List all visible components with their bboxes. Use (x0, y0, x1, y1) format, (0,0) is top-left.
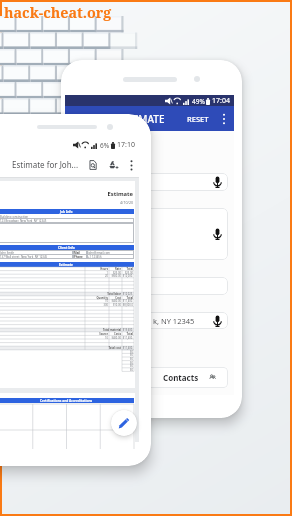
staticText: $0 (122, 357, 133, 361)
staticText: $12,025.00 (122, 292, 133, 296)
staticText: Estimate for Joh... (12, 159, 79, 170)
staticText: $11,400.00 (122, 299, 133, 303)
staticText: 10 (85, 299, 108, 303)
button[interactable]: RESET (183, 109, 213, 129)
button[interactable]: More options (126, 156, 137, 174)
staticText: $0 (122, 368, 133, 372)
staticText: Contacts (163, 372, 199, 383)
staticText: 123 Broadway, New York, NY 12345 (0, 219, 47, 223)
staticText: john@email.com (88, 251, 110, 255)
staticText: $25.00 (122, 271, 133, 275)
staticText: $400.00 (109, 336, 121, 340)
button[interactable]: Save to Drive (106, 156, 122, 174)
staticText: $0 (122, 350, 133, 354)
staticText: 300 (85, 303, 108, 307)
staticText: Total cost (85, 346, 121, 350)
staticText: 1 (85, 271, 108, 275)
staticText: ESTIMATE (118, 112, 165, 126)
staticText: Estimate (0, 190, 133, 198)
staticText: $25.00 (109, 271, 121, 275)
staticText: Estimate (59, 263, 74, 267)
staticText: Source (85, 332, 108, 336)
staticText: 17:04 (212, 96, 230, 106)
staticText: 17:10 (117, 140, 135, 150)
staticText: $0 (122, 353, 133, 357)
button[interactable]: Contacts (79, 367, 228, 388)
staticText: 137 Wall street, New York, NY 12345 (0, 255, 48, 259)
staticText: John Smith (0, 251, 15, 255)
staticText: Total cost (122, 267, 133, 271)
staticText: $11,400.00 (122, 346, 133, 350)
button[interactable]: Voice input (79, 208, 228, 260)
staticText: $19,400.00 (122, 328, 133, 332)
staticText: $400.00 (109, 299, 121, 303)
staticText: 4/10/20 (0, 200, 133, 205)
staticText: 6% (100, 141, 110, 150)
staticText: Total labor (85, 292, 121, 296)
staticText: Quantity (85, 296, 108, 300)
staticText: Certifications and Accreditations (40, 399, 93, 403)
staticText: k, NY 12345 (153, 316, 195, 326)
staticText: Building construction (0, 215, 29, 219)
button[interactable]: More options (217, 109, 231, 129)
button[interactable]: Voice input (79, 173, 228, 191)
staticText: $600.00 (109, 274, 121, 278)
staticText: 49% (192, 97, 205, 106)
staticText: 10 (85, 336, 108, 340)
staticText: Phone (74, 255, 83, 259)
staticText: Total cost (122, 296, 133, 300)
staticText: Rate (109, 267, 121, 271)
other: Voice input (213, 228, 222, 240)
staticText: $12,000.00 (122, 274, 133, 278)
button[interactable]: Preview (85, 156, 101, 174)
staticText: RESET (187, 114, 209, 124)
staticText: 20 (85, 274, 108, 278)
staticText: $10.00 (109, 303, 121, 307)
staticText: +1 123456 (88, 255, 102, 259)
staticText: hack-cheat.org (4, 3, 112, 22)
staticText: Costs (109, 332, 121, 336)
button[interactable] (79, 277, 228, 295)
button[interactable]: Edit (111, 410, 137, 436)
staticText: $0 (122, 364, 133, 368)
other: Voice input (213, 315, 222, 327)
staticText: Total cost (122, 332, 133, 336)
staticText: Cost (109, 296, 121, 300)
staticText: Job Info (60, 210, 73, 214)
other: Voice input (213, 176, 222, 188)
staticText: Total material (85, 328, 121, 332)
staticText: $8,000.00 (122, 303, 133, 307)
staticText: Client Info (58, 246, 75, 250)
staticText: Hours (85, 267, 108, 271)
staticText: $11,400.00 (122, 336, 133, 340)
staticText: $0 (122, 361, 133, 365)
button[interactable]: k, NY 12345 (79, 312, 228, 329)
staticText: Mail (74, 251, 80, 255)
